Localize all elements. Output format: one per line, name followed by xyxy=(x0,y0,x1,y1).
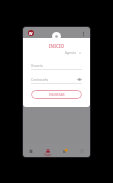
button[interactable]: Show password xyxy=(77,77,82,82)
staticText: Usuario xyxy=(31,64,43,68)
button[interactable]: Pagos xyxy=(39,144,56,157)
staticText: W xyxy=(29,31,33,36)
button[interactable]: Agencia xyxy=(31,51,82,55)
button[interactable]: Profile xyxy=(52,32,61,41)
button[interactable]: Menu xyxy=(80,30,86,36)
button[interactable]: INGRESAR xyxy=(31,90,82,99)
button[interactable]: Inicio xyxy=(23,144,39,157)
staticText: INGRESAR xyxy=(49,93,65,97)
staticText: Contraseña xyxy=(31,78,49,82)
button[interactable]: Ofertas xyxy=(56,144,73,157)
staticText: INICIO xyxy=(31,43,82,49)
staticText: Pagos xyxy=(44,153,52,157)
button[interactable]: Mas xyxy=(73,144,90,157)
button[interactable]: Logo xyxy=(28,30,34,36)
staticText: Agencia xyxy=(65,51,76,55)
